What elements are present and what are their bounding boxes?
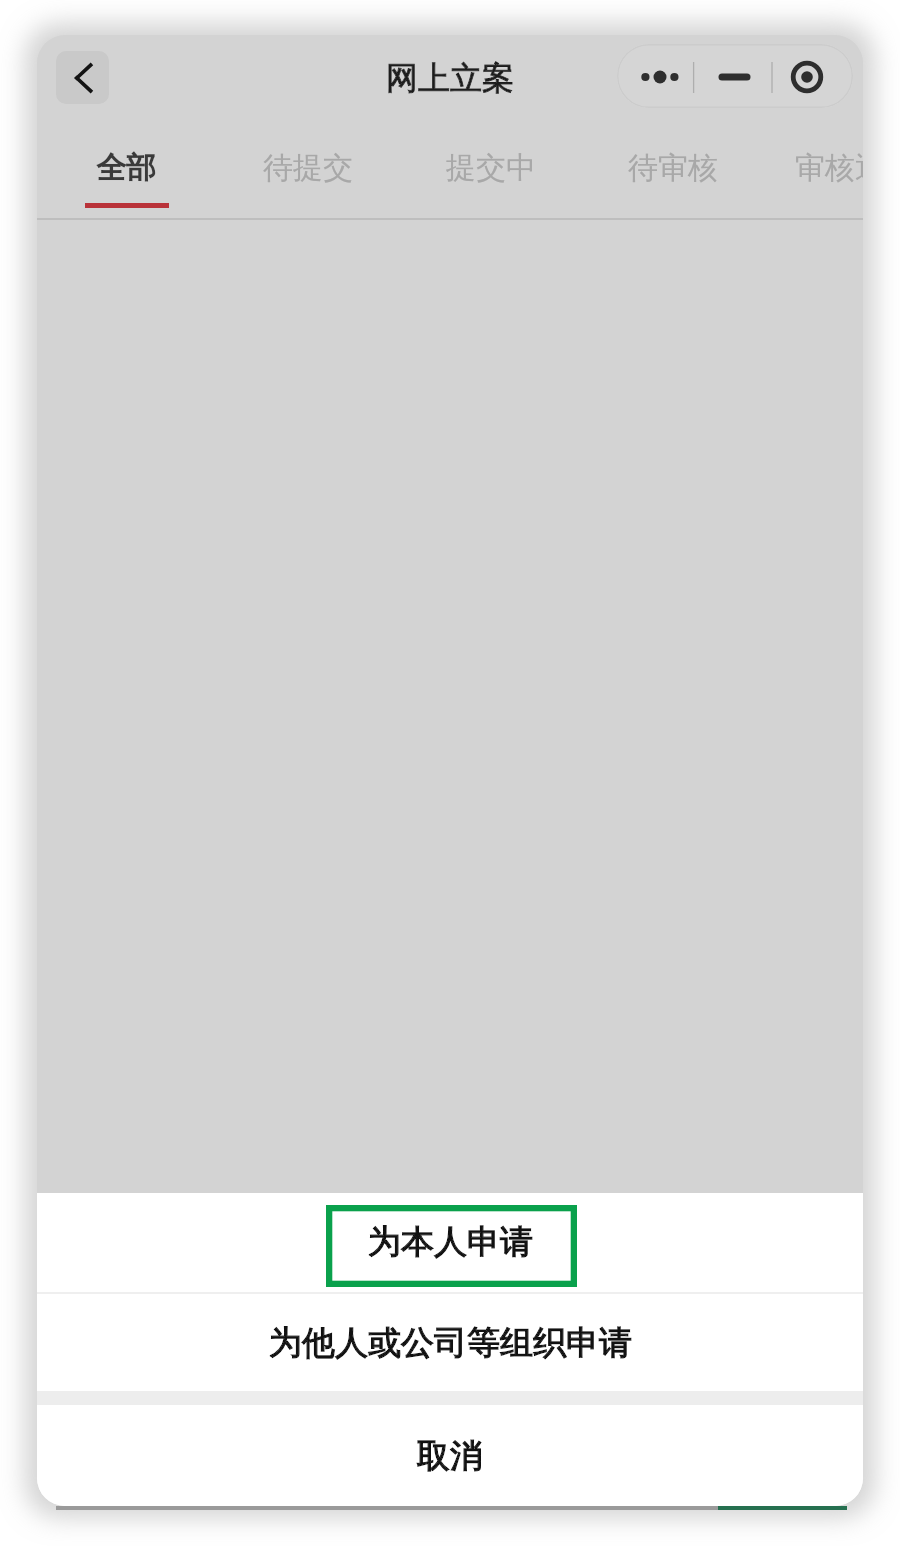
button[interactable]: 待审核: [598, 131, 748, 204]
staticText: 网上立案: [386, 58, 514, 98]
button[interactable]: 提交中: [416, 131, 566, 204]
staticText: 待审核: [628, 149, 718, 187]
button[interactable]: 取消: [37, 1405, 863, 1506]
staticText: 取消: [417, 1435, 483, 1477]
button[interactable]: 为他人或公司等组织申请: [37, 1294, 863, 1391]
staticText: 网上立案: [386, 58, 514, 98]
button[interactable]: 待提交: [233, 131, 383, 204]
staticText: 审核通过: [795, 149, 863, 187]
staticText: 待提交: [263, 149, 353, 187]
button[interactable]: 审核通过: [780, 131, 863, 204]
staticText: 为他人或公司等组织申请: [269, 1322, 632, 1364]
staticText: 提交中: [446, 149, 536, 187]
button[interactable]: 为本人申请: [37, 1193, 863, 1292]
staticText: 取消: [417, 1435, 483, 1477]
staticText: 为他人或公司等组织申请: [269, 1322, 632, 1364]
staticText: 为本人申请: [368, 1221, 533, 1263]
button[interactable]: Close: [773, 44, 853, 108]
button[interactable]: 全部: [51, 131, 201, 204]
button[interactable]: Minimize: [695, 44, 772, 108]
button[interactable]: Back: [56, 51, 109, 104]
staticText: 为本人申请: [368, 1221, 533, 1263]
button[interactable]: More options: [621, 44, 693, 108]
staticText: 全部: [96, 149, 156, 187]
